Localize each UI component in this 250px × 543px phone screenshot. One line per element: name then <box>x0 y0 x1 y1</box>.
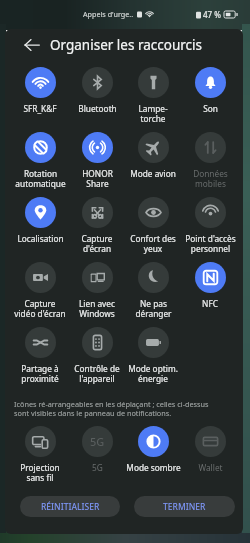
button[interactable]: Capture vidéo d'écran <box>9 262 71 320</box>
button[interactable]: Lien avec Windows <box>66 262 128 320</box>
button[interactable]: Projection sans fil <box>9 426 71 484</box>
staticText: TERMINER <box>163 501 206 513</box>
staticText: 47 % <box>203 9 221 20</box>
button[interactable]: Lampe- torche <box>122 67 184 125</box>
staticText: Lampe- torche <box>138 103 168 125</box>
staticText: Wallet <box>198 462 223 473</box>
staticText: RÉINITIALISER <box>41 501 100 513</box>
button[interactable]: Wallet <box>179 426 241 473</box>
staticText: Données mobiles <box>193 168 228 190</box>
staticText: Icônes ré-arrangeables en les déplaçant … <box>14 399 223 418</box>
staticText: Bluetooth <box>78 103 117 114</box>
staticText: Capture vidéo d'écran <box>14 298 66 320</box>
staticText: Appels d'urge.. <box>83 9 134 19</box>
staticText: Confort des yeux <box>130 233 176 255</box>
button[interactable]: Mode avion <box>122 132 184 179</box>
staticText: Son <box>203 103 218 114</box>
staticText: 5G <box>90 434 105 449</box>
staticText: 5G <box>92 462 103 473</box>
button[interactable]: Rotation automatique <box>9 132 71 190</box>
staticText: Partage à proximité <box>21 363 59 385</box>
button[interactable]: Capture d'écran <box>66 197 128 255</box>
button[interactable]: Partage à proximité <box>9 327 71 385</box>
staticText: Mode sombre <box>126 462 181 473</box>
staticText: Lien avec Windows <box>79 298 115 320</box>
button[interactable]: Bluetooth <box>66 67 128 114</box>
button[interactable]: Son <box>179 67 241 114</box>
button[interactable]: Mode sombre <box>122 426 184 473</box>
button[interactable]: NFC <box>179 262 241 309</box>
button[interactable]: Retour <box>20 33 44 57</box>
button[interactable]: 5G <box>66 426 128 473</box>
button[interactable]: Contrôle de l'appareil <box>66 327 128 385</box>
staticText: Capture d'écran <box>81 233 113 255</box>
button[interactable]: Point d'accès personnel <box>179 197 241 255</box>
staticText: Projection sans fil <box>20 462 60 484</box>
staticText: Rotation automatique <box>15 168 66 190</box>
staticText: Mode avion <box>130 168 176 179</box>
staticText: Localisation <box>17 233 64 244</box>
button[interactable]: SFR_K&F <box>9 67 71 114</box>
button[interactable]: Ne pas déranger <box>122 262 184 320</box>
button[interactable]: Confort des yeux <box>122 197 184 255</box>
staticText: Ne pas déranger <box>135 298 172 320</box>
staticText: Organiser les raccourcis <box>50 36 203 54</box>
button[interactable]: RÉINITIALISER <box>20 496 120 517</box>
button[interactable]: Données mobiles <box>179 132 241 190</box>
staticText: SFR_K&F <box>23 103 57 114</box>
button[interactable]: Mode optim. énergie <box>122 327 184 385</box>
button[interactable]: Localisation <box>9 197 71 244</box>
staticText: HONOR Share <box>82 168 113 190</box>
button[interactable]: TERMINER <box>134 496 235 517</box>
staticText: NFC <box>202 298 218 309</box>
staticText: Contrôle de l'appareil <box>74 363 120 385</box>
staticText: Mode optim. énergie <box>128 363 178 385</box>
button[interactable]: HONOR Share <box>66 132 128 190</box>
staticText: Point d'accès personnel <box>185 233 236 255</box>
